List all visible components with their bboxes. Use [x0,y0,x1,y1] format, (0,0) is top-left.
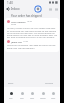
button[interactable]: Spaces [38,87,47,103]
button[interactable]: Delete [53,6,59,12]
staticText: 1:40 [7,1,13,5]
staticText: Hi there, thanks so much for your recent… [7,27,57,38]
button[interactable]: Back [5,6,11,12]
button[interactable]: Meet [28,87,37,103]
staticText: Spaces [40,97,46,99]
button[interactable]: Archive [47,6,53,12]
staticText: Mail [9,97,13,99]
staticText: 10:24 [27,20,32,23]
staticText: Jamie Lee [11,40,22,43]
button[interactable]: Mail [6,87,15,103]
button[interactable]: Reply [8,82,14,85]
button[interactable]: More [49,87,58,103]
staticText: Reply [8,82,14,85]
staticText: Forward [45,82,54,85]
button[interactable]: Alex Morgan [5,18,59,52]
staticText: 11:02 [23,40,28,43]
button[interactable]: Refresh [34,5,42,13]
button[interactable]: Chat [17,87,26,103]
staticText: Meet [30,97,35,99]
staticText: Chat [20,97,24,99]
staticText: to me [11,23,17,26]
staticText: Inbox [11,7,20,11]
staticText: Alex Morgan [11,20,26,23]
staticText: More [51,97,56,99]
staticText: Your order has shipped [11,14,42,18]
staticText: Thanks for the update. I will keep an ey… [7,44,57,49]
button[interactable]: Forward [45,82,54,85]
